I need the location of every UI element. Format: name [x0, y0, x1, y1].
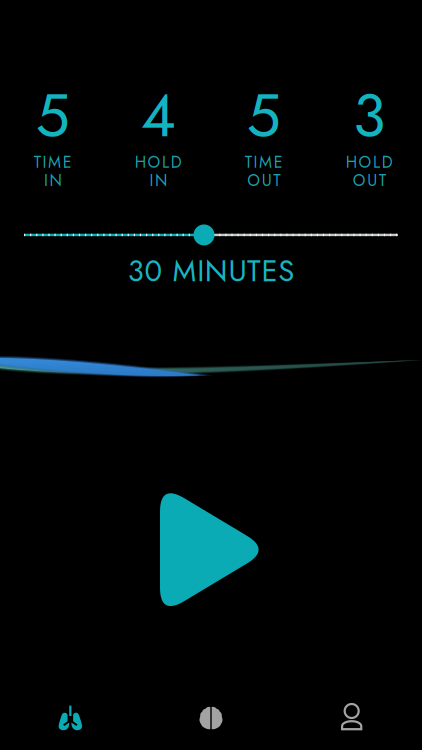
staticText: 3	[353, 72, 386, 159]
staticText: 4	[141, 72, 176, 159]
staticText: HOLD	[135, 151, 182, 174]
button[interactable]: Mind	[141, 686, 281, 750]
button[interactable]: Start session	[160, 484, 270, 616]
button[interactable]: Profile	[281, 686, 422, 750]
staticText: OUT	[353, 169, 386, 192]
button[interactable]: 5	[0, 72, 105, 205]
button[interactable]: 3	[316, 72, 422, 205]
staticText: TIME	[34, 151, 72, 174]
staticText: IN	[149, 169, 167, 192]
staticText: HOLD	[346, 151, 393, 174]
staticText: 30 MINUTES	[128, 250, 294, 292]
button[interactable]: Breathe	[0, 686, 141, 750]
button[interactable]: 5	[211, 72, 316, 205]
button[interactable]: Session duration	[24, 224, 398, 246]
staticText: 5	[247, 72, 281, 159]
staticText: TIME	[245, 151, 283, 174]
staticText: OUT	[247, 169, 280, 192]
button[interactable]: 4	[105, 72, 211, 205]
staticText: 5	[36, 72, 70, 159]
staticText: IN	[44, 169, 62, 192]
